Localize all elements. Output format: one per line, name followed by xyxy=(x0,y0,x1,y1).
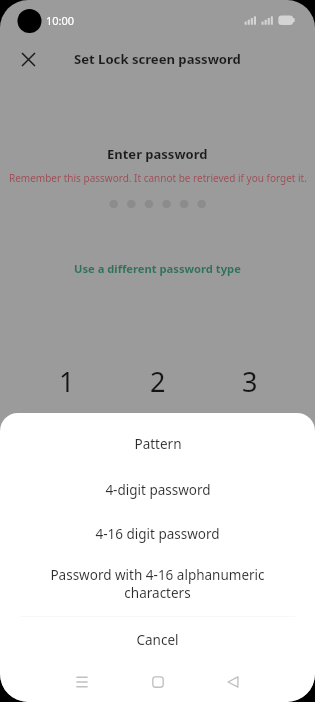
button[interactable]: Recent apps xyxy=(62,662,102,702)
staticText: Pattern xyxy=(134,435,182,453)
button[interactable]: 4-digit password xyxy=(0,467,315,512)
staticText: Remember this password. It cannot be ret… xyxy=(9,171,307,185)
button[interactable]: 3 xyxy=(224,363,275,411)
staticText: 1 xyxy=(59,363,75,400)
staticText: 10:00 xyxy=(46,13,75,28)
button[interactable]: Password with 4-16 alphanumeric characte… xyxy=(0,558,315,610)
staticText: 4-16 digit password xyxy=(95,525,220,543)
staticText: Password with 4-16 alphanumeric characte… xyxy=(50,566,265,602)
button[interactable]: Close xyxy=(10,41,46,77)
button[interactable]: 4-16 digit password xyxy=(0,511,315,556)
button[interactable]: Back xyxy=(213,662,253,702)
staticText: 2 xyxy=(150,363,166,400)
staticText: 4-digit password xyxy=(105,481,211,499)
button[interactable]: Cancel xyxy=(0,617,315,662)
staticText: Enter password xyxy=(107,145,208,163)
staticText: Use a different password type xyxy=(74,261,241,276)
button[interactable]: Home xyxy=(138,662,178,702)
staticText: 3 xyxy=(242,363,258,400)
staticText: Set Lock screen password xyxy=(74,50,241,68)
button[interactable]: Pattern xyxy=(0,422,315,466)
button[interactable]: 2 xyxy=(132,363,183,411)
button[interactable]: Use a different password type xyxy=(66,255,249,282)
button[interactable]: 1 xyxy=(41,363,92,411)
staticText: Cancel xyxy=(136,631,179,649)
